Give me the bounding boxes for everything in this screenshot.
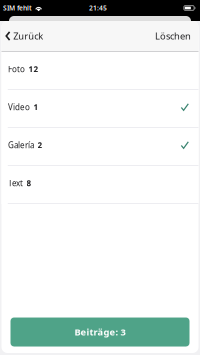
staticText: Video bbox=[8, 102, 30, 112]
staticText: Löschen bbox=[155, 30, 191, 42]
button[interactable]: Text bbox=[1, 166, 198, 204]
button[interactable]: Foto bbox=[1, 52, 198, 90]
button[interactable]: Zurück bbox=[1, 21, 49, 51]
button[interactable]: Löschen bbox=[147, 21, 198, 51]
staticText: 21:45 bbox=[89, 4, 107, 12]
staticText: Foto bbox=[8, 64, 25, 74]
staticText: Galería bbox=[8, 140, 34, 150]
staticText: 1 bbox=[34, 102, 39, 112]
staticText: Zurück bbox=[13, 30, 43, 42]
button[interactable]: Video bbox=[1, 90, 198, 128]
staticText: Beiträge: 3 bbox=[74, 326, 125, 338]
button[interactable]: Galería bbox=[1, 128, 198, 166]
staticText: 8 bbox=[27, 178, 32, 188]
staticText: Text bbox=[8, 178, 23, 188]
button[interactable]: Beiträge: 3 bbox=[10, 317, 189, 346]
staticText: 2 bbox=[38, 140, 43, 150]
staticText: 12 bbox=[29, 64, 39, 74]
staticText: SIM fehlt bbox=[3, 4, 32, 12]
